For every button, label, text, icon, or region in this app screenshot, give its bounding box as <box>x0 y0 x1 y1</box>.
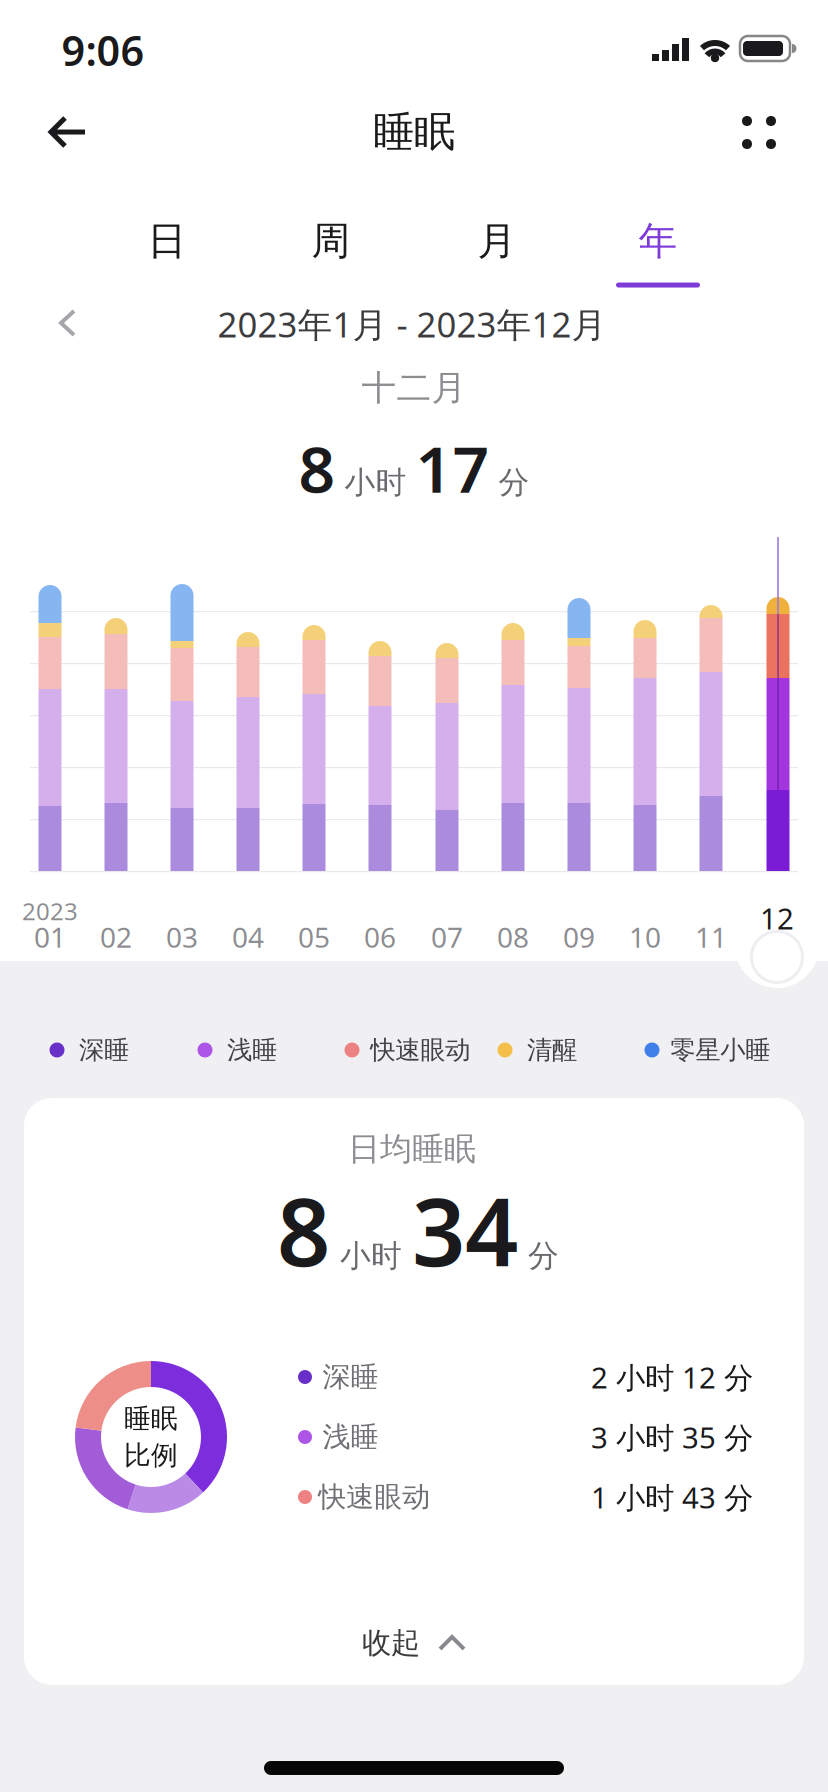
button[interactable]: 月 <box>437 206 557 276</box>
staticText: 02 <box>100 918 132 956</box>
staticText: 1 小时 43 分 <box>591 1477 753 1516</box>
staticText: 34 <box>412 1168 518 1292</box>
staticText: 分 <box>498 464 529 501</box>
staticText: 深睡 <box>79 1034 129 1065</box>
staticText: 3 小时 35 分 <box>591 1417 753 1456</box>
staticText: 月 <box>477 217 516 265</box>
staticText: 浅睡 <box>227 1034 277 1065</box>
button[interactable]: 日 <box>107 206 227 276</box>
staticText: 收起 <box>362 1625 420 1661</box>
staticText: 2023 <box>22 895 78 927</box>
staticText: 07 <box>431 918 463 956</box>
staticText: 2 小时 12 分 <box>591 1357 753 1396</box>
staticText: 8 <box>277 1168 330 1292</box>
staticText: 深睡 <box>323 1360 379 1394</box>
staticText: 零星小睡 <box>670 1034 770 1065</box>
staticText: 08 <box>497 918 529 956</box>
staticText: 01 <box>34 918 66 956</box>
staticText: 9:06 <box>61 23 144 77</box>
button[interactable]: 周 <box>271 206 391 276</box>
staticText: 快速眼动 <box>318 1480 430 1514</box>
staticText: 17 <box>415 425 489 510</box>
button[interactable]: 收起 <box>314 1613 514 1673</box>
staticText: 比例 <box>124 1439 178 1472</box>
staticText: 05 <box>298 918 330 956</box>
staticText: 2023年1月 - 2023年12月 <box>217 301 606 347</box>
staticText: 04 <box>232 918 264 956</box>
staticText: 小时 <box>340 1237 402 1275</box>
button[interactable] <box>49 111 89 153</box>
staticText: 06 <box>364 918 396 956</box>
staticText: 11 <box>695 918 727 956</box>
staticText: 10 <box>629 918 661 956</box>
staticText: 周 <box>311 217 350 265</box>
button[interactable] <box>753 933 801 981</box>
staticText: 日均睡眠 <box>348 1129 476 1169</box>
button[interactable] <box>58 309 80 339</box>
staticText: 8 <box>298 425 335 510</box>
staticText: 快速眼动 <box>370 1034 470 1065</box>
button[interactable] <box>741 114 777 150</box>
staticText: 小时 <box>344 464 406 501</box>
button[interactable]: 年 <box>598 206 718 276</box>
staticText: 03 <box>166 918 198 956</box>
staticText: 睡眠 <box>373 107 455 157</box>
staticText: 十二月 <box>361 367 466 409</box>
staticText: 日 <box>147 217 186 265</box>
staticText: 年 <box>638 217 677 265</box>
staticText: 睡眠 <box>124 1402 178 1435</box>
staticText: 分 <box>528 1237 559 1275</box>
staticText: 浅睡 <box>323 1420 379 1454</box>
staticText: 09 <box>563 918 595 956</box>
staticText: 12 <box>760 898 794 937</box>
staticText: 清醒 <box>527 1034 577 1065</box>
